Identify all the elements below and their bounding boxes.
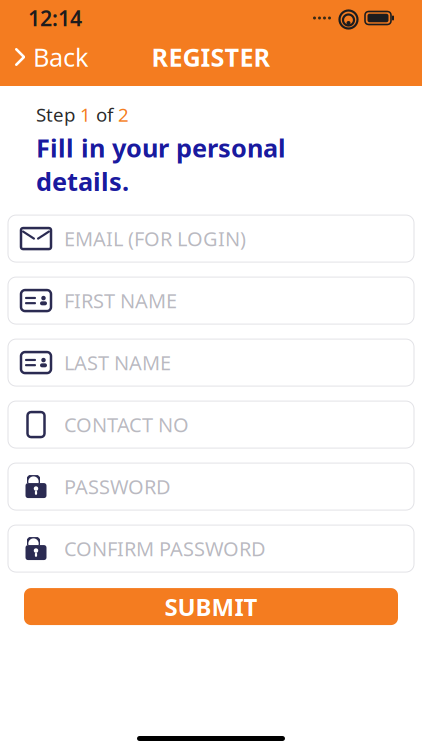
button[interactable]: FIRST NAME — [8, 277, 414, 324]
button[interactable]: CONFIRM PASSWORD — [8, 525, 414, 572]
staticText: Fill in your personal details. — [36, 131, 286, 198]
button[interactable]: SUBMIT — [24, 588, 398, 625]
staticText: SUBMIT — [164, 591, 257, 622]
button[interactable]: PASSWORD — [8, 463, 414, 510]
staticText: LAST NAME — [64, 349, 171, 376]
button[interactable]: Back — [0, 36, 103, 78]
staticText: 1 — [80, 102, 91, 127]
button[interactable]: CONTACT NO — [8, 401, 414, 448]
staticText: Step — [36, 102, 80, 127]
staticText: FIRST NAME — [64, 287, 177, 314]
staticText: of — [91, 102, 118, 127]
button[interactable]: LAST NAME — [8, 339, 414, 386]
staticText: 2 — [118, 102, 129, 127]
staticText: EMAIL (FOR LOGIN) — [64, 225, 246, 252]
staticText: 12:14 — [28, 4, 82, 32]
staticText: Back — [33, 40, 89, 74]
staticText: REGISTER — [151, 40, 270, 74]
staticText: CONTACT NO — [64, 411, 189, 438]
button[interactable]: EMAIL (FOR LOGIN) — [8, 215, 414, 262]
staticText: PASSWORD — [64, 473, 171, 500]
staticText: CONFIRM PASSWORD — [64, 535, 266, 562]
